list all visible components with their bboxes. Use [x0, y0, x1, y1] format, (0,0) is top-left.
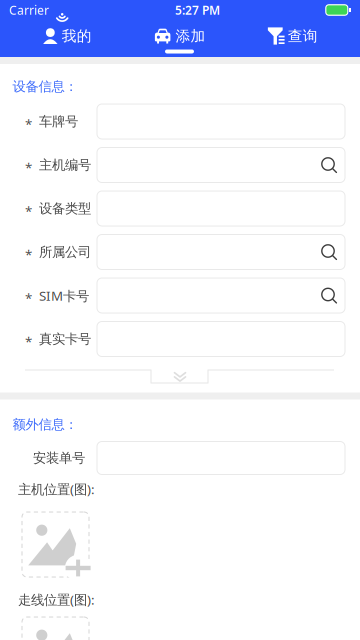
button[interactable]: *: [0, 274, 360, 317]
staticText: Carrier: [9, 2, 49, 18]
staticText: *: [25, 159, 32, 176]
staticText: 额外信息：: [12, 416, 77, 433]
staticText: 查询: [288, 27, 318, 45]
staticText: 我的: [62, 27, 92, 45]
staticText: 所属公司: [39, 244, 91, 260]
button[interactable]: Add photo: [22, 512, 89, 577]
staticText: 设备信息：: [12, 78, 77, 95]
staticText: *: [25, 246, 32, 263]
button[interactable]: *: [0, 143, 360, 186]
staticText: *: [25, 333, 32, 350]
staticText: 安装单号: [33, 450, 85, 466]
staticText: 走线位置(图):: [18, 591, 95, 608]
staticText: 主机位置(图):: [18, 480, 95, 498]
button[interactable]: *: [0, 187, 360, 230]
staticText: 主机编号: [39, 157, 91, 173]
button[interactable]: 安装单号: [0, 437, 360, 478]
button[interactable]: 查询: [236, 19, 349, 53]
staticText: 添加: [175, 27, 205, 45]
button[interactable]: Collapse section: [0, 362, 360, 392]
staticText: 5:27 PM: [175, 2, 220, 18]
button[interactable]: *: [0, 230, 360, 273]
staticText: *: [25, 115, 32, 133]
button[interactable]: *: [0, 317, 360, 360]
staticText: 车牌号: [39, 113, 78, 130]
button[interactable]: *: [0, 100, 360, 143]
staticText: *: [25, 289, 32, 307]
staticText: *: [25, 202, 32, 220]
button[interactable]: 我的: [11, 19, 124, 53]
staticText: 真实卡号: [39, 331, 91, 347]
button[interactable]: Add photo: [22, 617, 89, 640]
button[interactable]: 添加: [124, 19, 236, 53]
staticText: SIM卡号: [39, 287, 89, 304]
staticText: 设备类型: [39, 200, 91, 217]
